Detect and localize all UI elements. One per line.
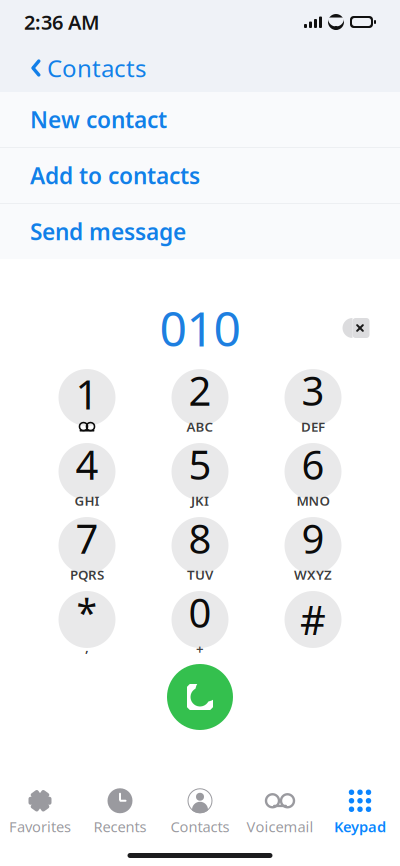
staticText: DEF bbox=[301, 418, 325, 435]
button[interactable]: 4 bbox=[58, 443, 115, 500]
staticText: 2 bbox=[188, 364, 211, 417]
staticText: 8 bbox=[188, 512, 211, 565]
button[interactable]: 7 bbox=[58, 517, 115, 574]
button[interactable]: Add to contacts bbox=[0, 148, 400, 203]
staticText: TUV bbox=[187, 566, 213, 583]
staticText: GHI bbox=[74, 492, 99, 509]
button[interactable]: 2 bbox=[171, 369, 228, 426]
button[interactable]: Voicemail bbox=[240, 782, 320, 840]
button[interactable]: 5 bbox=[171, 443, 228, 500]
button[interactable]: 9 bbox=[284, 517, 341, 574]
staticText: 7 bbox=[75, 512, 98, 565]
button[interactable]: Send message bbox=[0, 204, 400, 259]
staticText: * bbox=[76, 587, 97, 637]
staticText: Keypad bbox=[334, 817, 386, 836]
button[interactable]: 8 bbox=[171, 517, 228, 574]
button[interactable]: 3 bbox=[284, 369, 341, 426]
staticText: Recents bbox=[93, 817, 146, 836]
button[interactable]: 0 bbox=[171, 591, 228, 648]
staticText: # bbox=[300, 593, 326, 646]
staticText: + bbox=[196, 640, 204, 657]
button[interactable]: Favorites bbox=[0, 782, 80, 840]
button[interactable]: Call bbox=[167, 664, 233, 730]
staticText: 9 bbox=[301, 512, 324, 565]
button[interactable]: * bbox=[58, 591, 115, 648]
button[interactable]: 6 bbox=[284, 443, 341, 500]
button[interactable]: Keypad bbox=[320, 782, 400, 840]
button[interactable]: Delete bbox=[332, 308, 380, 348]
staticText: Contacts bbox=[47, 52, 146, 84]
staticText: 1 bbox=[75, 367, 98, 420]
staticText: 5 bbox=[188, 438, 211, 491]
staticText: , bbox=[85, 638, 89, 656]
staticText: 0 bbox=[188, 586, 211, 639]
staticText: 2:36 AM bbox=[24, 9, 100, 35]
staticText: ABC bbox=[186, 418, 213, 435]
staticText: Add to contacts bbox=[30, 160, 200, 190]
staticText: 4 bbox=[75, 438, 98, 491]
staticText: 6 bbox=[301, 438, 324, 491]
staticText: New contact bbox=[30, 104, 167, 134]
staticText: 3 bbox=[301, 364, 324, 417]
staticText: PQRS bbox=[70, 566, 104, 583]
staticText: Favorites bbox=[9, 817, 71, 836]
staticText: Voicemail bbox=[246, 817, 313, 836]
button[interactable]: New contact bbox=[0, 92, 400, 147]
button[interactable]: # bbox=[284, 591, 341, 648]
button[interactable]: Recents bbox=[80, 782, 160, 840]
staticText: WXYZ bbox=[294, 566, 332, 583]
staticText: Send message bbox=[30, 216, 186, 246]
button[interactable]: Contacts bbox=[14, 44, 162, 92]
staticText: MNO bbox=[296, 492, 329, 509]
button[interactable]: 1 bbox=[58, 369, 115, 426]
staticText: 010 bbox=[159, 296, 240, 360]
staticText: JKI bbox=[191, 492, 209, 509]
staticText: Contacts bbox=[170, 817, 229, 836]
button[interactable]: Contacts bbox=[160, 782, 240, 840]
